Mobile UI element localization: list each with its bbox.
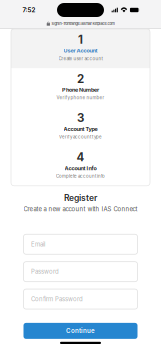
staticText: Continue: [66, 327, 95, 335]
button[interactable]: 2: [11, 68, 150, 107]
staticText: 3: [77, 111, 84, 125]
button[interactable]: 3: [11, 107, 150, 147]
staticText: 4: [76, 150, 84, 164]
button[interactable]: Email: [23, 234, 137, 254]
staticText: Phone Number: [62, 86, 99, 93]
staticText: Register: [64, 193, 97, 203]
staticText: Email: [31, 241, 45, 248]
staticText: Account Type: [63, 126, 97, 132]
staticText: Confirm Password: [31, 295, 83, 303]
staticText: 7:52: [22, 6, 35, 14]
staticText: Verify account type: [59, 134, 102, 140]
staticText: Account Info: [64, 165, 96, 171]
staticText: 1: [78, 33, 83, 46]
staticText: signin-frontrange.iasmarketplace.com: [51, 21, 114, 26]
button[interactable]: 4: [11, 147, 150, 186]
staticText: 2: [77, 72, 84, 86]
staticText: Complete account info: [56, 173, 105, 179]
staticText: Password: [31, 268, 59, 275]
staticText: Create a new account with IAS Connect: [23, 205, 137, 213]
button[interactable]: signin-frontrange.iasmarketplace.com: [47, 21, 114, 26]
button[interactable]: Password: [23, 262, 137, 282]
staticText: Create user account: [58, 56, 102, 61]
button[interactable]: Continue: [23, 323, 137, 339]
staticText: User Account: [63, 47, 97, 54]
staticText: Verify phone number: [56, 95, 104, 100]
button[interactable]: Confirm Password: [23, 289, 137, 309]
button[interactable]: 1: [11, 29, 150, 68]
